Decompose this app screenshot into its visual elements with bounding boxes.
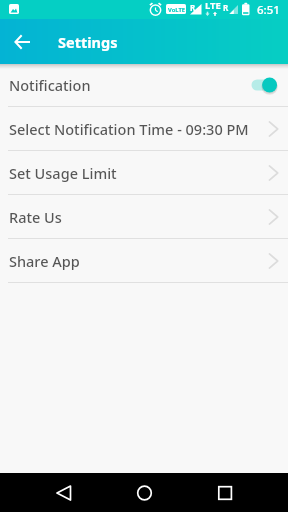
button[interactable]: Notification [0, 64, 288, 106]
button[interactable]: Share App [0, 239, 288, 282]
staticText: VoLTE [168, 6, 185, 14]
staticText: 6:51 [257, 2, 280, 18]
button[interactable]: Home [126, 473, 162, 512]
staticText: LTE [205, 0, 221, 12]
staticText: Rate Us [9, 207, 263, 227]
button[interactable]: Back [47, 473, 83, 512]
staticText: Share App [9, 251, 263, 271]
staticText: Select Notification Time - 09:30 PM [9, 119, 263, 139]
staticText: R [190, 2, 196, 13]
button[interactable]: Select Notification Time - 09:30 PM [0, 107, 288, 150]
button[interactable]: Recent apps [207, 473, 243, 512]
button[interactable]: Rate Us [0, 195, 288, 238]
staticText: R [223, 2, 229, 13]
staticText: Set Usage Limit [9, 163, 263, 183]
staticText: Settings [58, 32, 118, 52]
button[interactable]: Back [9, 29, 35, 55]
staticText: Notification [9, 75, 251, 95]
button[interactable]: Set Usage Limit [0, 151, 288, 194]
